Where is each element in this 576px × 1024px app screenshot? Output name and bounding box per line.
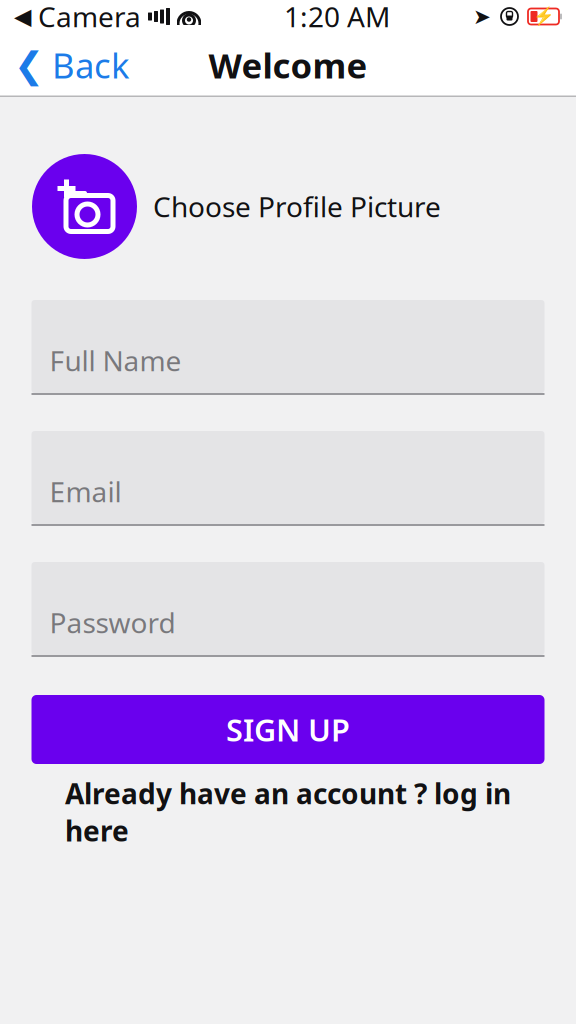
staticText: Already have an account ? log in here — [65, 775, 511, 849]
staticText: Camera — [31, 0, 141, 35]
button[interactable]: ❮ — [0, 34, 144, 96]
button[interactable]: Choose Profile Picture — [0, 154, 576, 259]
button[interactable]: Full Name — [31, 300, 544, 395]
staticText: ➤ — [473, 4, 491, 29]
staticText: SIGN UP — [226, 709, 350, 750]
staticText: 1:20 AM — [284, 0, 390, 35]
staticText: ◀ — [14, 4, 31, 29]
button[interactable]: Already have an account ? log in here — [31, 790, 544, 834]
staticText: Welcome — [208, 42, 367, 88]
button[interactable]: Password — [31, 562, 544, 657]
staticText: Choose Profile Picture — [153, 188, 441, 225]
staticText: ❮ — [14, 45, 44, 85]
staticText: Full Name — [49, 342, 181, 379]
button[interactable]: Email — [31, 431, 544, 526]
staticText: Password — [49, 604, 175, 641]
staticText: Back — [52, 42, 130, 88]
staticText: Email — [49, 473, 121, 510]
button[interactable]: SIGN UP — [31, 695, 544, 764]
staticText: ⚡ — [532, 7, 554, 26]
